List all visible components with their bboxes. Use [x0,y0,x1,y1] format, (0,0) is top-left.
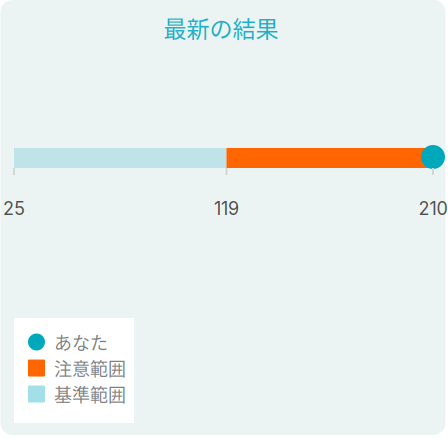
staticText: 基準範囲 [54,381,126,407]
button[interactable]: あなた [28,329,134,355]
button[interactable]: 注意範囲 [28,355,135,381]
button[interactable]: 基準範囲 [28,381,135,407]
staticText: あなた [54,329,108,355]
staticText: 最新の結果 [163,11,278,44]
staticText: 注意範囲 [54,355,126,381]
staticText: 119 [214,198,239,219]
staticText: 210 [418,198,447,219]
staticText: 25 [3,198,25,219]
